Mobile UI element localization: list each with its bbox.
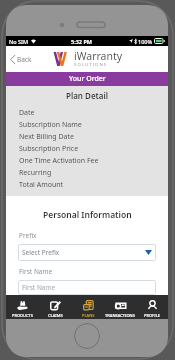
staticText: Prefix	[19, 231, 37, 240]
staticText: iWarranty	[74, 49, 123, 63]
button[interactable]: PLANS	[72, 295, 104, 319]
staticText: Plan Detail	[66, 90, 109, 101]
staticText: 5:32 PM	[71, 38, 93, 45]
button[interactable]: CLAIMS	[39, 295, 72, 319]
staticText: PROFILE	[144, 313, 160, 318]
staticText: CLAIMS	[48, 313, 63, 318]
staticText: Subscription Price	[19, 144, 79, 154]
staticText: First Name	[19, 267, 53, 276]
staticText: Date	[19, 108, 35, 118]
staticText: TRANSACTIONS	[105, 313, 135, 318]
staticText: Next Billing Date	[19, 132, 74, 142]
staticText: Total Amount	[19, 180, 64, 190]
staticText: Your Order	[69, 74, 106, 84]
staticText: Subscription Name	[19, 120, 82, 130]
button[interactable]: TRANSACTIONS	[104, 295, 136, 319]
staticText: One Time Activation Fee	[19, 156, 99, 166]
staticText: PRODUCTS	[12, 313, 33, 318]
button[interactable]: PRODUCTS	[6, 295, 39, 319]
button[interactable]: First Name	[18, 280, 156, 295]
staticText: Recurring	[19, 168, 52, 178]
staticText: PLANS	[82, 313, 95, 318]
staticText: Back	[17, 55, 32, 64]
staticText: No SIM	[9, 38, 29, 45]
button[interactable]: PROFILE	[136, 295, 168, 319]
staticText: Select Prefix	[22, 248, 60, 257]
button[interactable]: Back	[6, 51, 36, 68]
staticText: S O L U T I O N S	[74, 62, 107, 68]
staticText: First Name	[22, 283, 56, 292]
staticText: Personal Information	[43, 209, 132, 221]
staticText: 100%	[138, 38, 153, 45]
button[interactable]: Select Prefix	[18, 244, 156, 261]
